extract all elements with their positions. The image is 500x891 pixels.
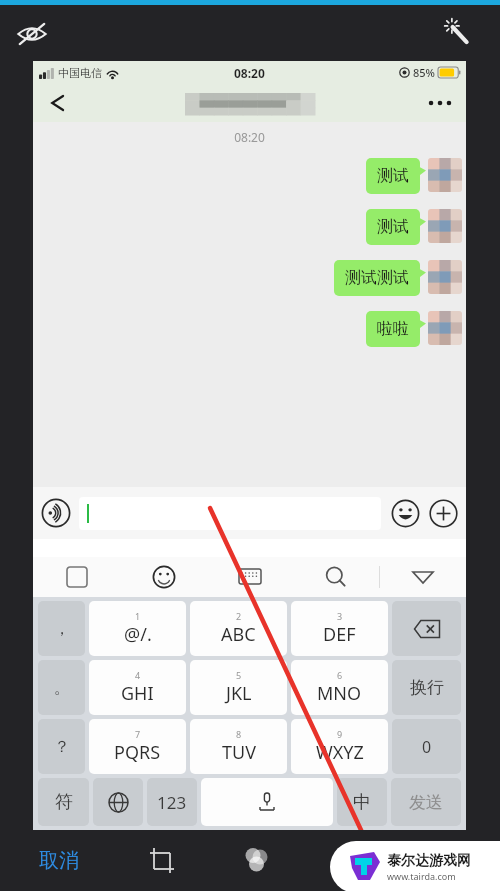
button[interactable]: Collapse keyboard	[380, 557, 466, 597]
staticText: ？	[54, 737, 70, 757]
button[interactable]: 7	[89, 719, 186, 774]
button[interactable]: Filters	[209, 830, 304, 891]
staticText: WXYZ	[316, 740, 364, 765]
button[interactable]: Hide	[14, 16, 50, 52]
button[interactable]: 。	[38, 660, 85, 715]
staticText: 0	[422, 736, 432, 758]
button[interactable]: Space / voice	[201, 778, 333, 826]
button[interactable]: smile	[120, 557, 207, 597]
button[interactable]: Switch language	[93, 778, 143, 826]
button[interactable]: 3	[291, 601, 388, 656]
button[interactable]: Magic wand	[440, 14, 476, 50]
staticText: 1	[135, 610, 141, 622]
button[interactable]: ，	[38, 601, 85, 656]
button[interactable]: ？	[38, 719, 85, 774]
button[interactable]: Voice input	[41, 498, 71, 528]
staticText: 中	[353, 791, 371, 814]
staticText: 9	[337, 728, 343, 740]
button[interactable]: 2	[190, 601, 287, 656]
button[interactable]: kb	[207, 557, 293, 597]
staticText: 8	[236, 728, 242, 740]
button[interactable]: 1	[89, 601, 186, 656]
button[interactable]	[79, 497, 381, 530]
staticText: 发送	[409, 792, 443, 813]
staticText: 4	[135, 669, 141, 681]
button[interactable]: 8	[190, 719, 287, 774]
button[interactable]: 0	[392, 719, 461, 774]
staticText: MNO	[317, 681, 362, 706]
button[interactable]: 6	[291, 660, 388, 715]
button[interactable]: 9	[291, 719, 388, 774]
button[interactable]: 测试测试	[334, 260, 420, 296]
staticText: 泰尔达游戏网	[387, 852, 471, 870]
staticText: ABC	[221, 622, 256, 647]
button[interactable]: 中	[337, 778, 387, 826]
button[interactable]: More options	[429, 499, 458, 528]
staticText: GHI	[121, 681, 154, 706]
staticText: 换行	[410, 677, 444, 698]
button[interactable]: Adjust	[304, 830, 400, 891]
staticText: 取消	[39, 848, 79, 873]
staticText: 2	[236, 610, 242, 622]
staticText: 测试测试	[345, 268, 409, 288]
staticText: 3	[337, 610, 343, 622]
button[interactable]: 符	[38, 778, 89, 826]
button[interactable]: 发送	[391, 778, 461, 826]
button[interactable]: 取消	[4, 830, 114, 891]
button[interactable]: 测试	[366, 209, 420, 245]
staticText: JKL	[226, 681, 252, 706]
staticText: 中国电信	[58, 66, 102, 80]
staticText: 啦啦	[377, 319, 409, 339]
staticText: 123	[157, 791, 187, 814]
staticText: DEF	[323, 622, 356, 647]
button[interactable]: 啦啦	[366, 311, 420, 347]
button[interactable]: Back	[41, 87, 73, 119]
staticText: 7	[135, 728, 141, 740]
button[interactable]: Emoji	[391, 499, 420, 528]
button[interactable]: 5	[190, 660, 287, 715]
staticText: PQRS	[114, 740, 161, 765]
button[interactable]: 123	[147, 778, 197, 826]
button[interactable]: Markup	[400, 830, 496, 891]
staticText: 。	[54, 678, 70, 698]
staticText: 5	[236, 669, 242, 681]
staticText: 测试	[377, 217, 409, 237]
staticText: ，	[54, 619, 70, 639]
button[interactable]: More	[424, 87, 456, 119]
staticText: TUV	[222, 740, 256, 765]
staticText: 85%	[413, 65, 435, 80]
staticText: 符	[55, 791, 73, 814]
staticText: 08:20	[33, 129, 466, 145]
staticText: www.tairda.com	[387, 870, 456, 882]
staticText: @/.	[124, 622, 152, 647]
button[interactable]	[392, 601, 461, 656]
button[interactable]: 4	[89, 660, 186, 715]
staticText: 测试	[377, 166, 409, 186]
button[interactable]: sogou	[33, 557, 120, 597]
staticText: 08:20	[234, 65, 265, 81]
button[interactable]: Crop	[114, 830, 209, 891]
button[interactable]: 测试	[366, 158, 420, 194]
button[interactable]: search	[293, 557, 379, 597]
button[interactable]: 换行	[392, 660, 461, 715]
staticText: 6	[337, 669, 343, 681]
